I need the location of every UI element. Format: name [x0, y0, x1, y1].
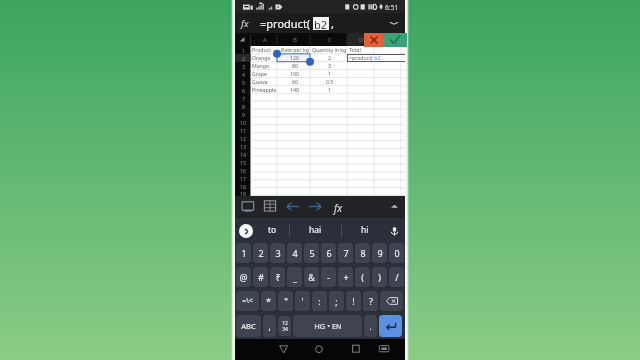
button[interactable]: Collapse: [385, 196, 403, 218]
staticText: #: [258, 271, 264, 283]
button[interactable]: hi: [342, 218, 387, 241]
staticText: ;: [335, 295, 338, 307]
button[interactable]: ): [372, 267, 387, 287]
staticText: to: [268, 224, 277, 236]
button[interactable]: ₹: [270, 267, 285, 287]
staticText: 4: [292, 247, 298, 259]
staticText: =product(: [349, 54, 373, 61]
button[interactable]: 6: [321, 243, 336, 263]
staticText: 6: [242, 87, 245, 94]
staticText: 100: [290, 70, 299, 77]
button[interactable]: Back: [273, 339, 293, 360]
button[interactable]: (: [355, 267, 370, 287]
staticText: fx: [241, 17, 249, 30]
button[interactable]: !: [346, 291, 361, 311]
staticText: Quantity in kg: [312, 46, 347, 53]
button[interactable]: 0: [389, 243, 404, 263]
staticText: /: [395, 271, 399, 283]
button[interactable]: _: [287, 267, 302, 287]
staticText: Total: [349, 46, 361, 53]
button[interactable]: +: [338, 267, 353, 287]
button[interactable]: Accept: [383, 33, 407, 47]
staticText: Mango: [252, 62, 270, 69]
button[interactable]: More suggestions: [239, 224, 253, 238]
staticText: C: [328, 36, 332, 44]
staticText: b2: [373, 54, 381, 61]
staticText: 1: [241, 247, 247, 259]
button[interactable]: Freeze panes: [239, 196, 259, 218]
button[interactable]: @: [236, 267, 251, 287]
button[interactable]: Backspace: [380, 291, 403, 311]
staticText: :: [318, 295, 321, 307]
button[interactable]: 7: [338, 243, 353, 263]
button[interactable]: Expand formula bar: [386, 15, 402, 31]
staticText: 13: [240, 143, 246, 150]
button[interactable]: ": [278, 291, 293, 311]
button[interactable]: =\<: [236, 291, 259, 311]
staticText: 2: [258, 247, 264, 259]
button[interactable]: Table format: [261, 196, 281, 218]
button[interactable]: /: [389, 267, 404, 287]
button[interactable]: Voice input: [386, 223, 402, 239]
button[interactable]: Functions: [329, 196, 349, 218]
button[interactable]: :: [312, 291, 327, 311]
button[interactable]: -: [321, 267, 336, 287]
button[interactable]: ?: [363, 291, 378, 311]
button[interactable]: Recents: [346, 339, 366, 360]
staticText: -: [327, 271, 330, 283]
staticText: 0.5: [326, 78, 334, 85]
staticText: 18: [240, 183, 246, 190]
staticText: ,: [331, 16, 334, 31]
button[interactable]: .: [364, 315, 377, 337]
staticText: 10: [240, 119, 246, 126]
staticText: A: [263, 36, 267, 44]
button[interactable]: #: [253, 267, 268, 287]
button[interactable]: Enter: [379, 315, 402, 337]
staticText: 3: [242, 63, 245, 70]
staticText: ,: [268, 321, 271, 332]
staticText: 1: [328, 70, 331, 77]
button[interactable]: Home: [309, 339, 329, 360]
staticText: 80: [292, 62, 298, 69]
button[interactable]: 8: [355, 243, 370, 263]
staticText: 14: [240, 151, 246, 158]
button[interactable]: ,: [263, 315, 276, 337]
staticText: 16: [240, 167, 246, 174]
staticText: 12: [240, 135, 246, 142]
button[interactable]: Previous: [283, 196, 303, 218]
button[interactable]: Hide keyboard: [373, 339, 393, 360]
staticText: 7: [242, 95, 245, 102]
button[interactable]: 9: [372, 243, 387, 263]
staticText: =product(: [260, 16, 311, 31]
staticText: Pineapple: [252, 86, 277, 93]
staticText: 2: [328, 54, 331, 61]
staticText: hai: [309, 224, 322, 236]
button[interactable]: &: [304, 267, 319, 287]
staticText: 60: [292, 78, 298, 85]
button[interactable]: *: [261, 291, 276, 311]
button[interactable]: ;: [329, 291, 344, 311]
staticText: 4: [242, 71, 245, 78]
button[interactable]: Cancel: [364, 33, 383, 47]
staticText: ): [378, 271, 381, 283]
staticText: 120: [290, 54, 299, 61]
button[interactable]: Numbers: [278, 316, 291, 336]
button[interactable]: Next: [305, 196, 325, 218]
button[interactable]: 2: [253, 243, 268, 263]
button[interactable]: ': [295, 291, 310, 311]
staticText: ABC: [241, 321, 256, 331]
staticText: 11: [240, 127, 246, 134]
button[interactable]: 1: [236, 243, 251, 263]
button[interactable]: ABC: [236, 315, 261, 337]
staticText: 9: [377, 247, 383, 259]
button[interactable]: HG • EN: [293, 315, 362, 337]
button[interactable]: 3: [270, 243, 285, 263]
staticText: &: [308, 271, 315, 283]
staticText: 1: [242, 47, 245, 54]
staticText: _: [293, 271, 297, 283]
staticText: 1: [328, 86, 331, 93]
button[interactable]: 5: [304, 243, 319, 263]
button[interactable]: 4: [287, 243, 302, 263]
button[interactable]: to: [256, 218, 289, 241]
button[interactable]: hai: [290, 218, 341, 241]
